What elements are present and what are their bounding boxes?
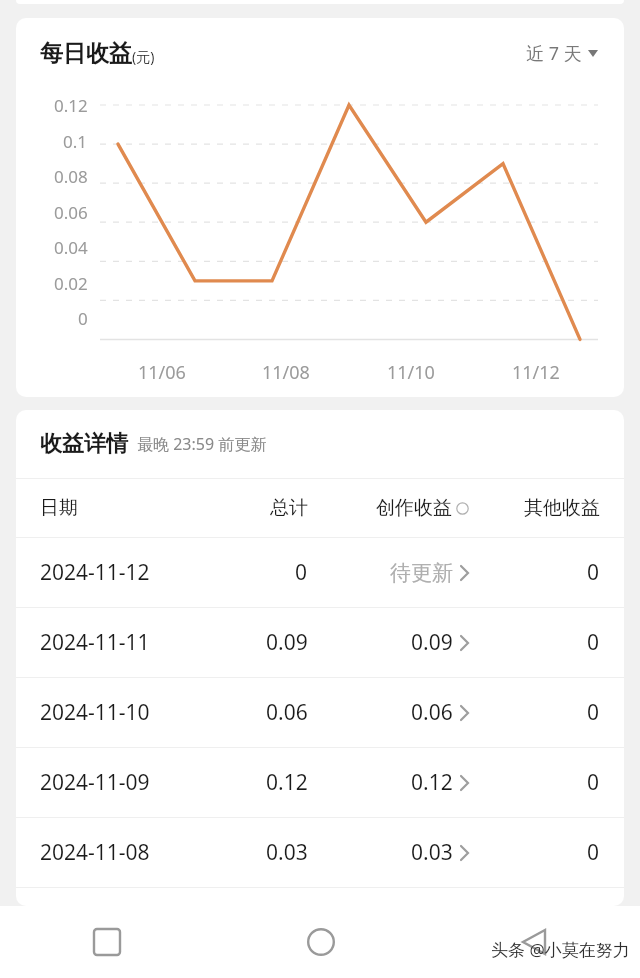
button[interactable]: 近 7 天 [522,37,602,70]
button[interactable]: 2024-11-10 [16,678,624,747]
other: 查看详情 [460,845,469,861]
staticText: 每日收益 [40,39,132,68]
staticText: 11/12 [512,360,560,385]
other: 查看详情 [460,705,469,721]
staticText: 0 [587,628,600,657]
staticText: 2024-11-08 [40,838,150,867]
staticText: 2024-11-10 [40,698,150,727]
staticText: 0 [587,838,600,867]
staticText: 0.03 [411,838,453,867]
staticText: 0 [78,307,88,330]
staticText: 2024-11-11 [40,628,150,657]
staticText: 0.03 [266,838,308,867]
button[interactable]: 2024-11-08 [16,818,624,887]
staticText: 0.09 [266,628,308,657]
button[interactable]: Back [427,906,640,978]
staticText: 2024-11-09 [40,768,150,797]
staticText: 0.09 [411,628,453,657]
staticText: 0.12 [411,768,453,797]
staticText: 0.08 [54,165,88,188]
staticText: 头条 @小莫在努力 [491,938,630,961]
other: 查看详情 [460,635,469,651]
staticText: 0.06 [266,698,308,727]
staticText: 11/10 [387,360,435,385]
staticText: 收益详情 [40,430,128,458]
button[interactable]: 2024-11-11 [16,608,624,677]
staticText: (元) [132,47,155,66]
staticText: 0.02 [54,272,88,295]
staticText: 近 7 天 [526,41,582,66]
staticText: 0.12 [266,768,308,797]
staticText: 0 [587,558,600,587]
staticText: 其他收益 [524,496,600,520]
staticText: 0.04 [54,236,88,259]
staticText: 创作收益 [376,496,452,520]
other: 查看详情 [460,565,469,581]
staticText: 2024-11-12 [40,558,150,587]
button[interactable]: 2024-11-09 [16,748,624,817]
button[interactable]: 2024-11-12 [16,538,624,607]
other: 查看详情 [460,775,469,791]
staticText: 11/08 [262,360,310,385]
staticText: 0 [295,558,308,587]
staticText: 总计 [270,496,308,520]
staticText: 待更新 [390,560,453,586]
staticText: 0 [587,698,600,727]
staticText: 0 [587,768,600,797]
staticText: 日期 [40,496,78,520]
staticText: 11/06 [138,360,186,385]
button[interactable]: Home [214,906,427,978]
staticText: 0.06 [54,201,88,224]
button[interactable]: Recents [0,906,214,978]
staticText: 0.06 [411,698,453,727]
staticText: 0.1 [63,130,88,153]
staticText: 最晚 23:59 前更新 [137,433,267,455]
staticText: 0.12 [54,94,88,117]
